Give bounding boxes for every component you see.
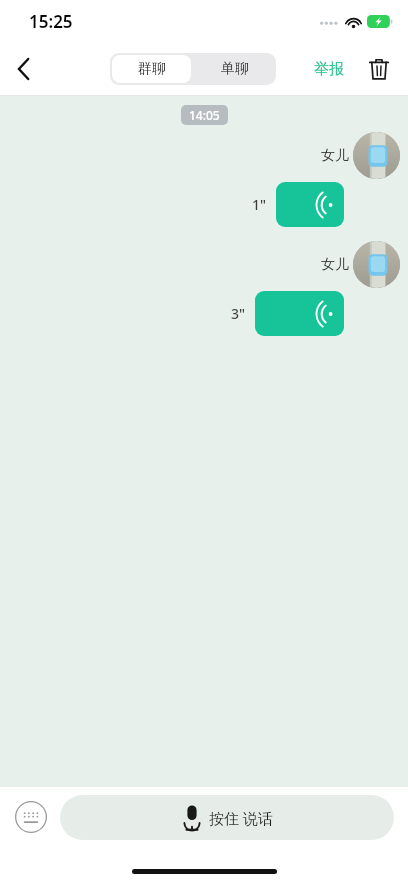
button[interactable]: Back xyxy=(0,45,48,93)
button[interactable]: Play voice message xyxy=(276,182,344,227)
button[interactable]: Keyboard xyxy=(12,798,50,836)
button[interactable]: 按住 说话 xyxy=(60,795,394,840)
staticText: 15:25 xyxy=(29,10,73,33)
staticText: 举报 xyxy=(314,60,344,79)
staticText: 群聊 xyxy=(138,60,166,78)
button[interactable]: Avatar xyxy=(353,132,400,179)
staticText: 单聊 xyxy=(221,60,249,78)
staticText: 1" xyxy=(252,195,267,214)
staticText: 3" xyxy=(231,304,246,323)
button[interactable]: Delete xyxy=(362,52,396,86)
button[interactable]: Play voice message xyxy=(255,291,344,336)
button[interactable]: 举报 xyxy=(308,54,350,85)
staticText: 女儿 xyxy=(321,147,349,165)
staticText: 女儿 xyxy=(321,256,349,274)
button[interactable]: 单聊 xyxy=(193,53,276,85)
button[interactable]: 群聊 xyxy=(112,55,191,83)
button[interactable]: Avatar xyxy=(353,241,400,288)
staticText: 14:05 xyxy=(189,107,220,123)
staticText: 按住 说话 xyxy=(209,808,273,828)
